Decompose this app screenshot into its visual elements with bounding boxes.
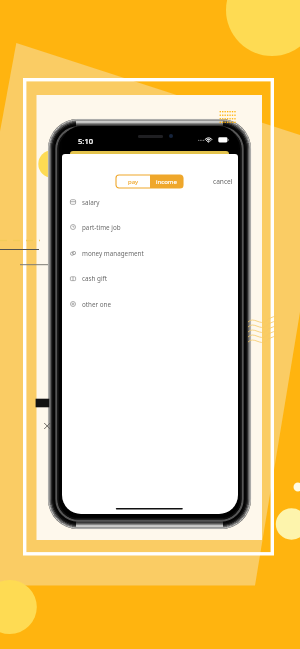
- button[interactable]: cancel: [211, 176, 235, 187]
- staticText: other one: [82, 300, 112, 309]
- staticText: salary: [82, 198, 100, 207]
- staticText: money management: [82, 249, 144, 258]
- button[interactable]: other one: [62, 296, 238, 312]
- button[interactable]: pay: [116, 175, 150, 188]
- staticText: 5:10: [78, 136, 94, 146]
- button[interactable]: cash gift: [62, 270, 238, 286]
- button[interactable]: income: [150, 175, 183, 188]
- staticText: cancel: [213, 177, 233, 186]
- button[interactable]: money management: [62, 245, 238, 261]
- button[interactable]: part-time job: [62, 219, 238, 235]
- staticText: pay: [128, 178, 139, 186]
- staticText: income: [156, 178, 177, 186]
- staticText: part-time job: [82, 223, 121, 232]
- staticText: cash gift: [82, 274, 108, 283]
- button[interactable]: salary: [62, 194, 238, 210]
